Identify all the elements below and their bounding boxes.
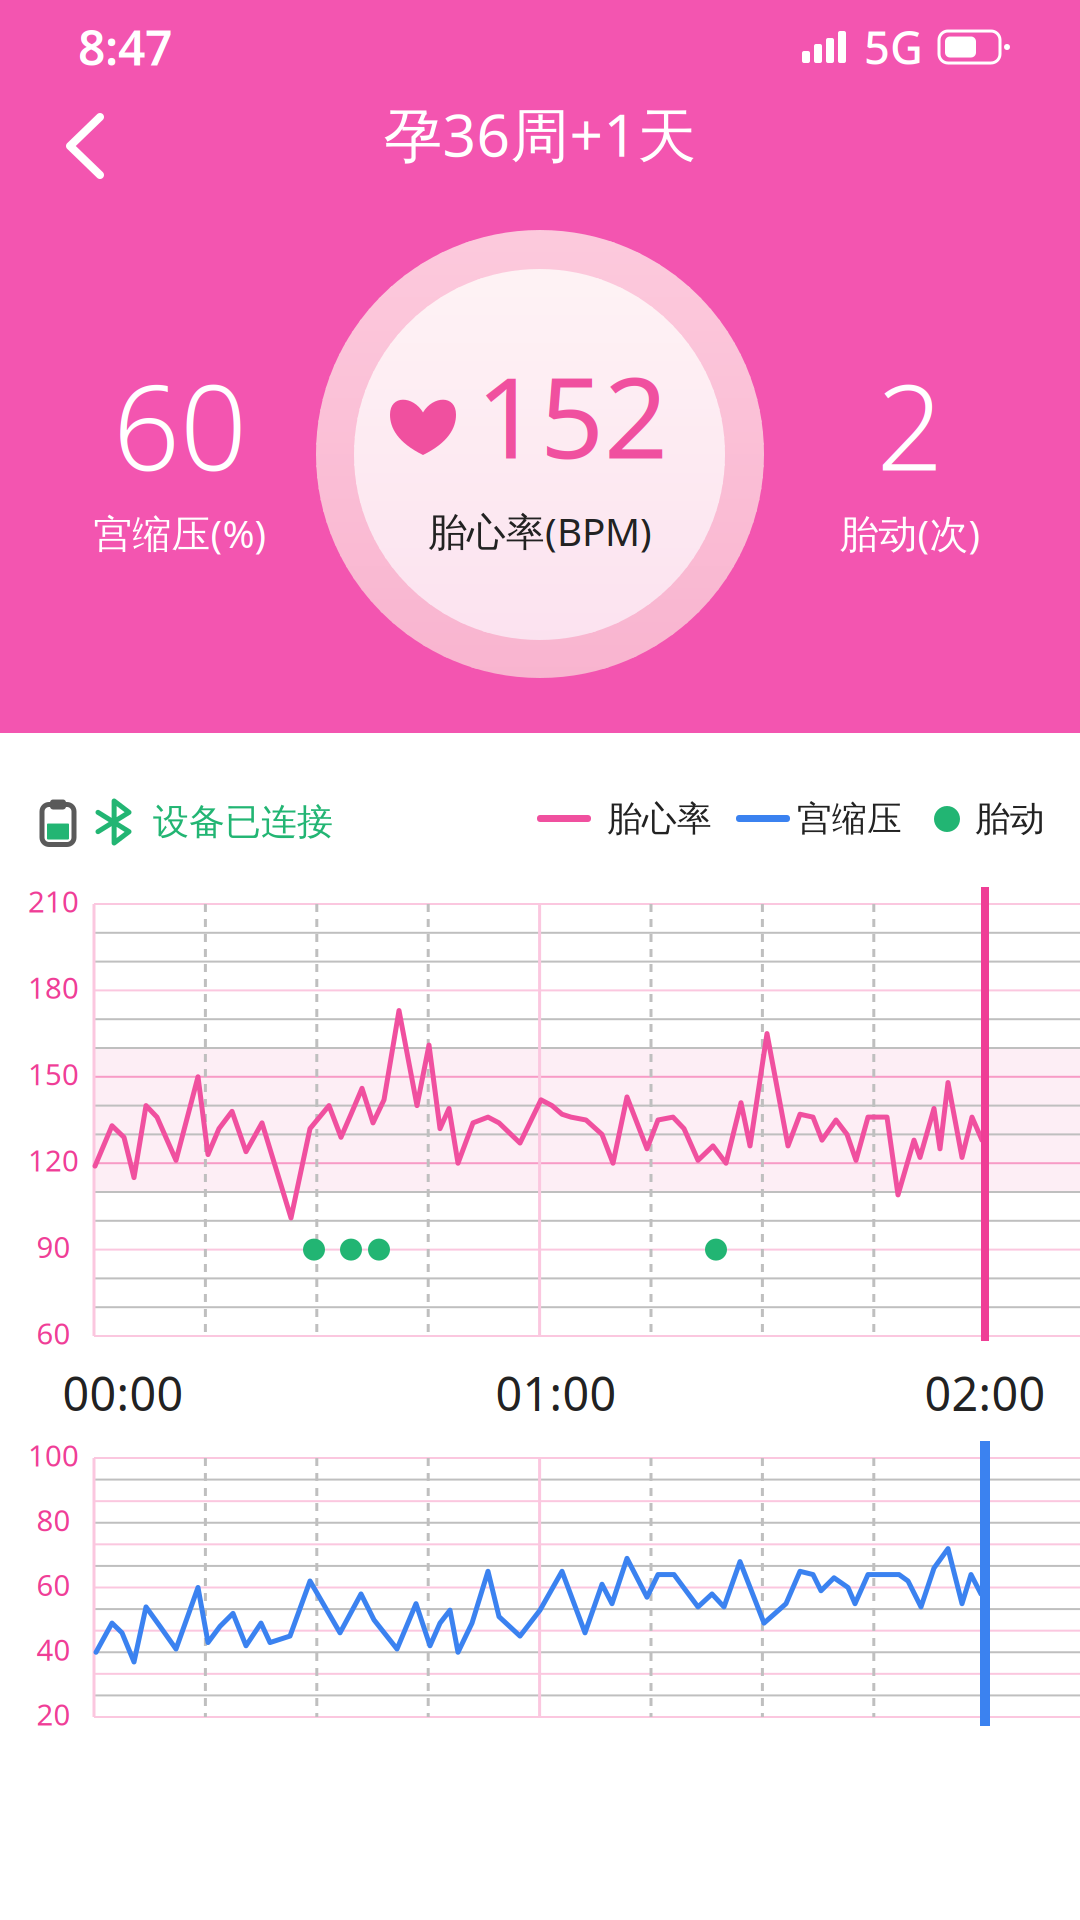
- staticText: 60: [113, 347, 247, 503]
- staticText: 宫缩压(%): [93, 507, 266, 559]
- staticText: 胎心率: [607, 798, 712, 840]
- staticText: 孕36周+1天: [383, 95, 696, 173]
- staticText: 8:47: [78, 15, 172, 79]
- staticText: 01:00: [495, 1362, 616, 1424]
- staticText: 60: [36, 1565, 70, 1604]
- staticText: 20: [36, 1694, 70, 1733]
- staticText: 5G: [864, 17, 923, 77]
- staticText: 40: [36, 1630, 70, 1669]
- staticText: 宫缩压: [797, 798, 902, 840]
- staticText: 胎动(次): [839, 507, 980, 559]
- staticText: 胎心率(BPM): [428, 505, 652, 557]
- staticText: 2: [876, 347, 943, 503]
- button[interactable]: Back: [28, 91, 142, 201]
- staticText: 80: [36, 1500, 70, 1539]
- staticText: 152: [476, 341, 668, 489]
- staticText: 100: [28, 1435, 79, 1474]
- staticText: 90: [36, 1227, 70, 1266]
- staticText: 150: [28, 1054, 79, 1093]
- staticText: 210: [28, 881, 79, 920]
- staticText: 胎动: [975, 798, 1045, 840]
- staticText: 60: [36, 1313, 70, 1352]
- staticText: 02:00: [924, 1362, 1045, 1424]
- staticText: 设备已连接: [153, 800, 333, 844]
- staticText: 120: [28, 1141, 79, 1180]
- staticText: 180: [28, 968, 79, 1007]
- staticText: 00:00: [62, 1362, 183, 1424]
